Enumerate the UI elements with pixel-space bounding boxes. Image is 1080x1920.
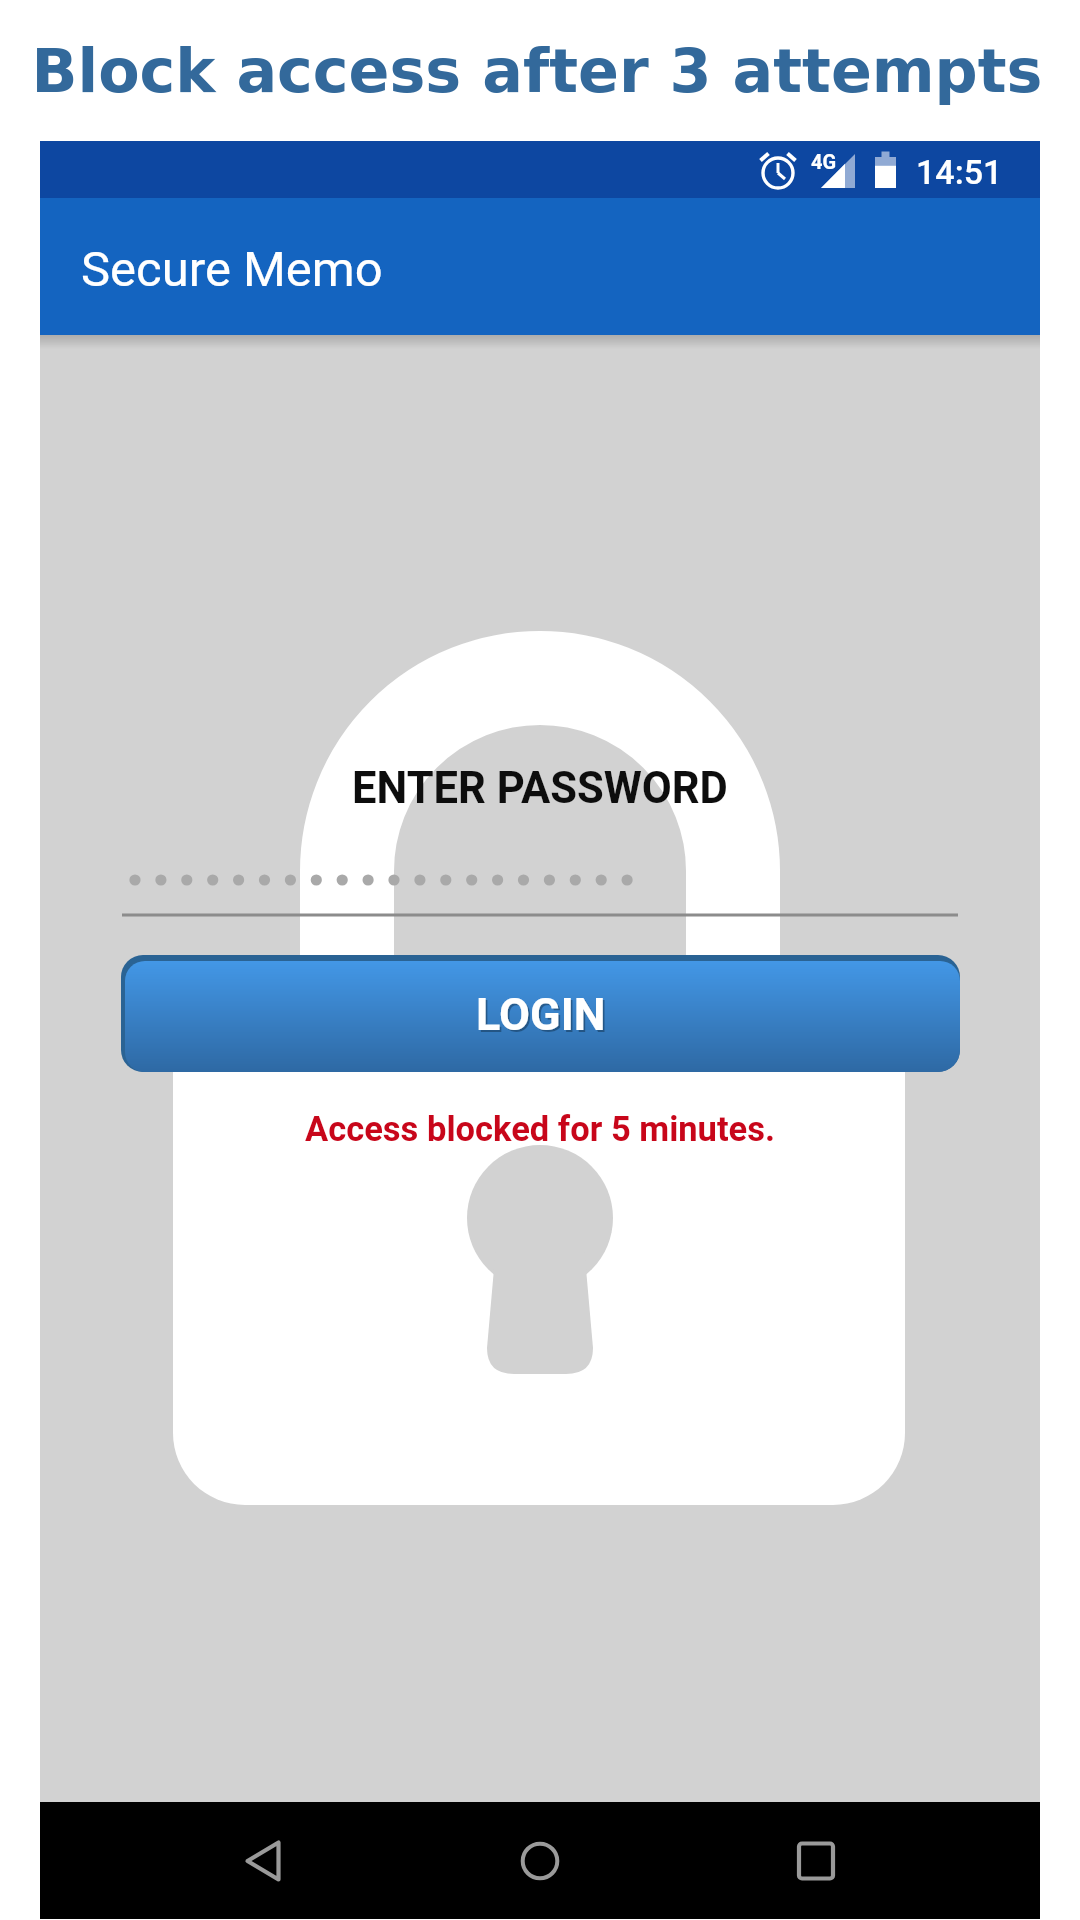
staticText: Block access after 3 attempts xyxy=(0,36,1077,106)
staticText: Access blocked for 5 minutes. xyxy=(40,1109,1040,1149)
button[interactable]: Recent apps xyxy=(768,1813,864,1909)
button[interactable]: LOGIN xyxy=(121,955,960,1072)
staticText: ENTER PASSWORD xyxy=(40,763,1040,814)
staticText: LOGIN xyxy=(476,988,606,1041)
staticText: LOGIN xyxy=(478,990,608,1043)
staticText: 14:51 xyxy=(916,152,1003,192)
button[interactable]: Home xyxy=(492,1813,588,1909)
staticText: Secure Memo xyxy=(81,241,383,298)
button[interactable]: Back xyxy=(215,1813,311,1909)
staticText: 4G xyxy=(811,150,837,173)
